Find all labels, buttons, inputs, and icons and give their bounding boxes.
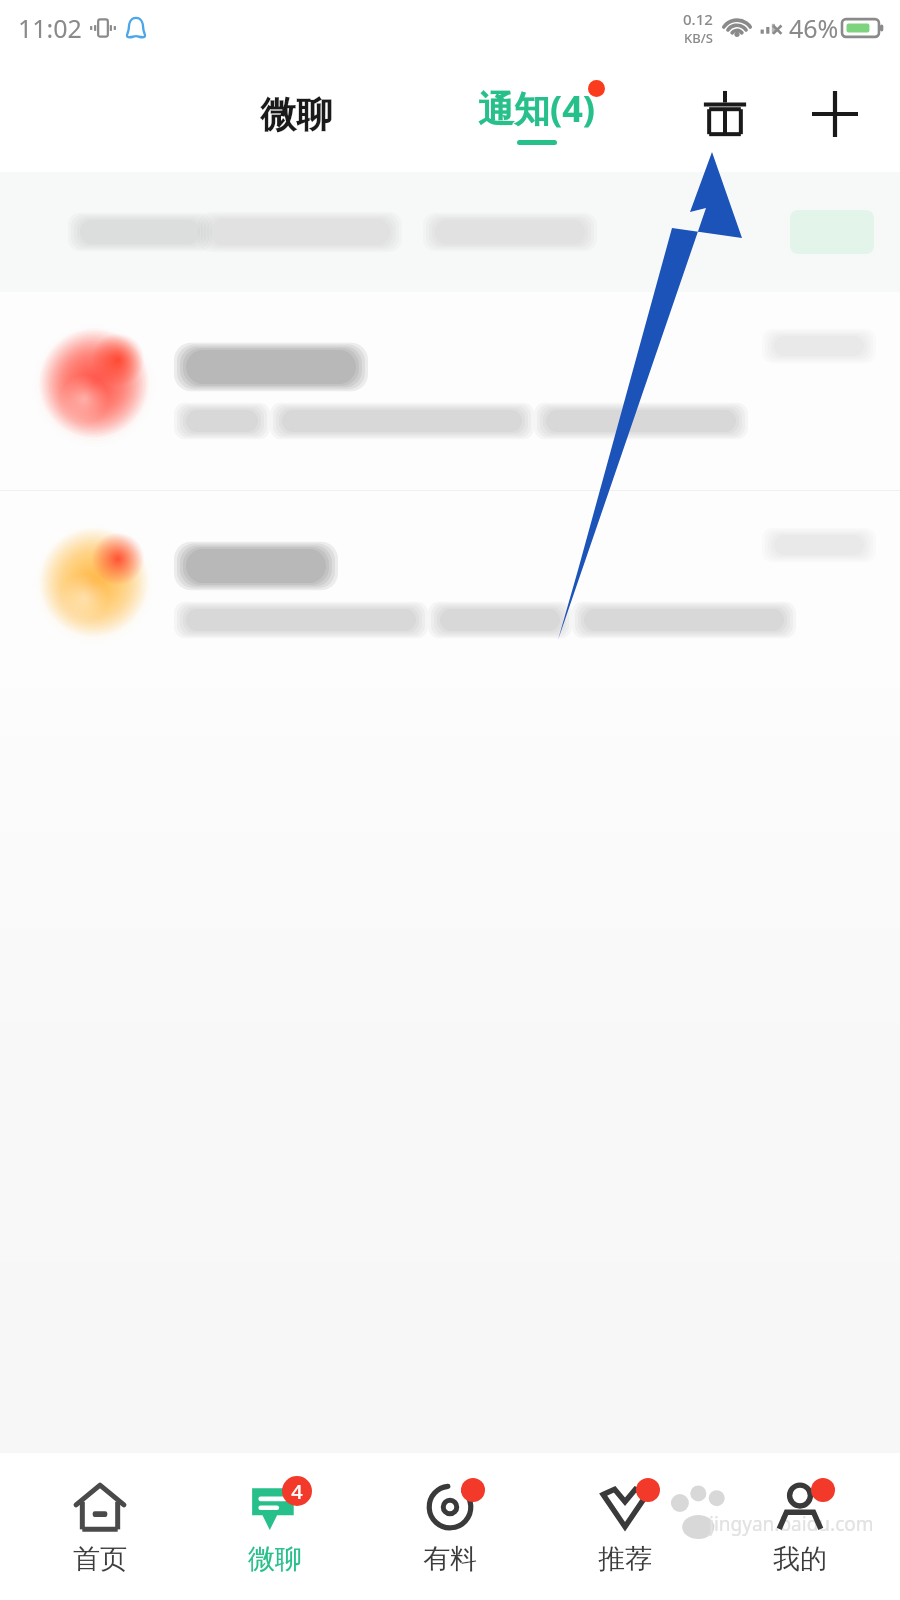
staticText: jingyan.baidu.com [709, 1511, 874, 1537]
button[interactable]: Clear [686, 75, 764, 153]
staticText: 46% [789, 11, 839, 45]
button[interactable]: 通知(4) [478, 84, 596, 145]
staticText: 微聊 [248, 1542, 302, 1576]
button[interactable]: 我的 [725, 1453, 875, 1600]
staticText: KB/S [684, 29, 713, 47]
button[interactable] [0, 292, 900, 490]
button[interactable]: 首页 [25, 1453, 175, 1600]
staticText: 有料 [423, 1542, 477, 1576]
button[interactable]: Add [796, 75, 874, 153]
staticText: 我的 [773, 1542, 827, 1576]
button[interactable] [0, 491, 900, 689]
button[interactable]: 有料 [375, 1453, 525, 1600]
button[interactable]: 4 [200, 1453, 350, 1600]
staticText: 4 [291, 1478, 303, 1505]
staticText: 0.12 [683, 9, 713, 29]
staticText: 微聊 [260, 92, 332, 137]
staticText: 11:02 [18, 11, 82, 45]
button[interactable]: 微聊 [250, 82, 342, 147]
staticText: 推荐 [598, 1542, 652, 1576]
button[interactable]: 推荐 [550, 1453, 700, 1600]
staticText: 通知(4) [478, 84, 596, 133]
staticText: 首页 [73, 1542, 127, 1576]
